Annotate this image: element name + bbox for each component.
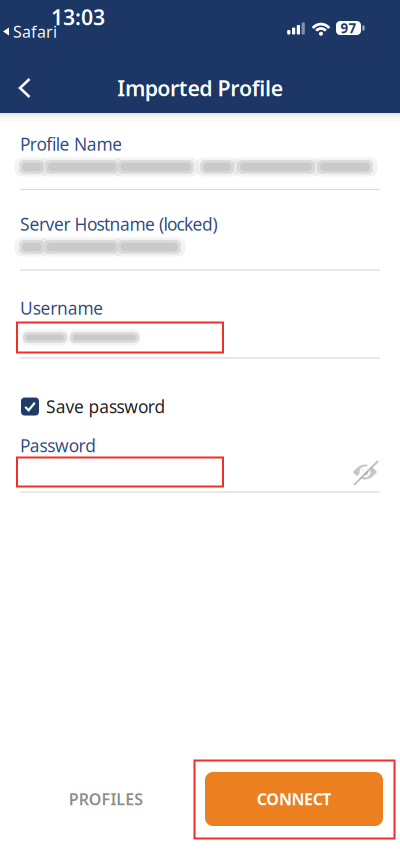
staticText: 13:03 [51, 3, 105, 31]
staticText: Save password [46, 395, 165, 418]
staticText: CONNECT [257, 788, 331, 810]
button[interactable]: PROFILES [59, 778, 153, 820]
button[interactable]: CONNECT [205, 772, 383, 826]
button[interactable]: Back [10, 69, 40, 106]
staticText: Imported Profile [117, 74, 283, 102]
staticText: Server Hostname (locked) [20, 212, 217, 235]
button[interactable]: Password [17, 457, 223, 486]
staticText: Username [20, 296, 103, 319]
staticText: 97 [340, 19, 356, 37]
button[interactable]: Return to Safari [3, 21, 57, 42]
staticText: Profile Name [20, 132, 122, 155]
staticText: Password [20, 434, 96, 457]
staticText: PROFILES [69, 788, 143, 810]
button[interactable]: Show password [352, 462, 378, 482]
button[interactable]: Username [17, 322, 223, 352]
staticText: Safari [13, 21, 57, 42]
button[interactable]: Save password [21, 395, 165, 418]
